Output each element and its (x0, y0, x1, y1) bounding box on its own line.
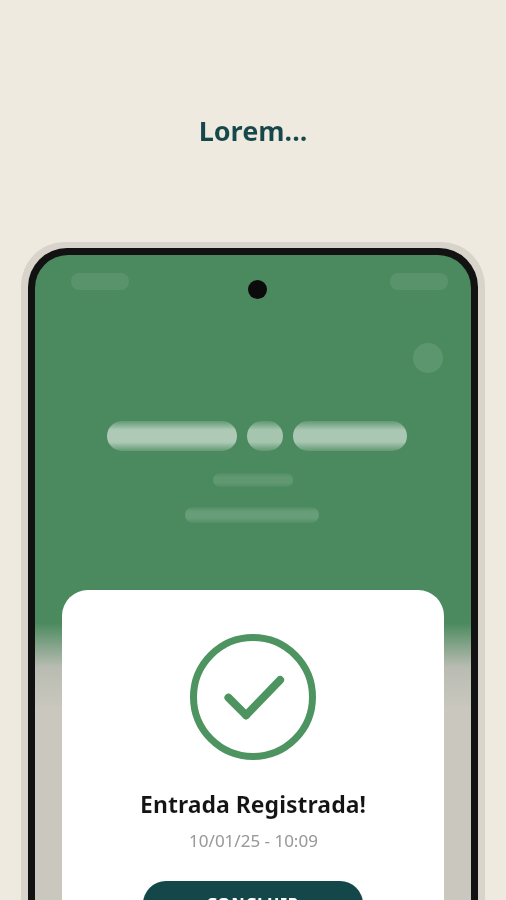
staticText: CONCLUIR (206, 893, 300, 900)
staticText: Entrada Registrada! (140, 788, 366, 819)
staticText: Lorem... (0, 112, 506, 149)
staticText: 10/01/25 - 10:09 (189, 829, 318, 852)
button[interactable]: CONCLUIR (143, 881, 363, 900)
